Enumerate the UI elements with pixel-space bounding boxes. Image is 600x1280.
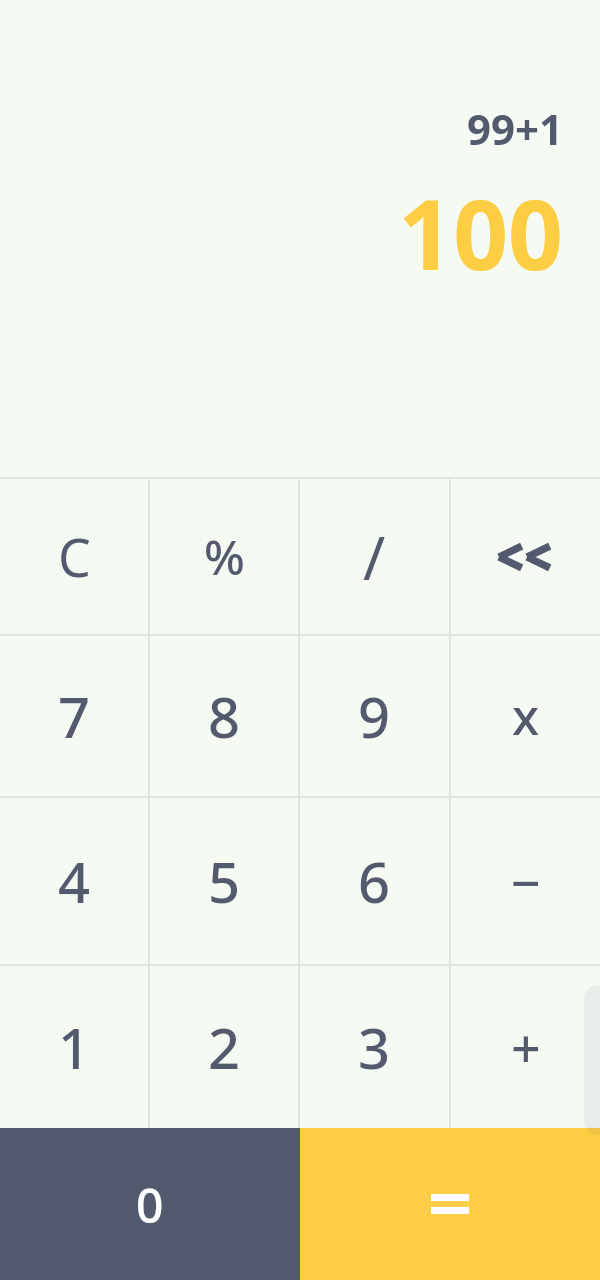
staticText: 1 xyxy=(58,1009,91,1085)
staticText: 99+1 xyxy=(466,100,563,157)
staticText: 4 xyxy=(58,843,91,919)
button[interactable]: 2 xyxy=(150,966,298,1128)
staticText: x xyxy=(512,682,540,750)
staticText: 100 xyxy=(398,167,563,298)
button[interactable]: 7 xyxy=(0,636,148,796)
button[interactable]: − xyxy=(451,798,600,964)
button[interactable]: Equals xyxy=(300,1128,600,1280)
button[interactable]: / xyxy=(300,479,449,634)
button[interactable]: 5 xyxy=(150,798,298,964)
button[interactable]: 0 xyxy=(0,1128,300,1280)
button[interactable]: 4 xyxy=(0,798,148,964)
staticText: − xyxy=(511,846,541,917)
staticText: C xyxy=(58,521,91,592)
button[interactable]: x xyxy=(451,636,600,796)
button[interactable]: Backspace xyxy=(451,479,600,634)
staticText: 2 xyxy=(208,1009,241,1085)
button[interactable]: + xyxy=(451,966,600,1128)
staticText: / xyxy=(363,516,386,598)
staticText: 6 xyxy=(358,843,391,919)
staticText: 7 xyxy=(58,678,91,754)
button[interactable]: 9 xyxy=(300,636,449,796)
staticText: 9 xyxy=(358,678,391,754)
button[interactable]: C xyxy=(0,479,148,634)
staticText: 3 xyxy=(358,1009,391,1085)
staticText: 0 xyxy=(136,1172,164,1237)
button[interactable]: 8 xyxy=(150,636,298,796)
staticText: 8 xyxy=(208,678,241,754)
staticText: + xyxy=(511,1012,541,1083)
button[interactable]: 6 xyxy=(300,798,449,964)
button[interactable]: 1 xyxy=(0,966,148,1128)
button[interactable]: 3 xyxy=(300,966,449,1128)
button[interactable]: % xyxy=(150,479,298,634)
staticText: % xyxy=(204,524,245,589)
staticText: 5 xyxy=(208,843,241,919)
